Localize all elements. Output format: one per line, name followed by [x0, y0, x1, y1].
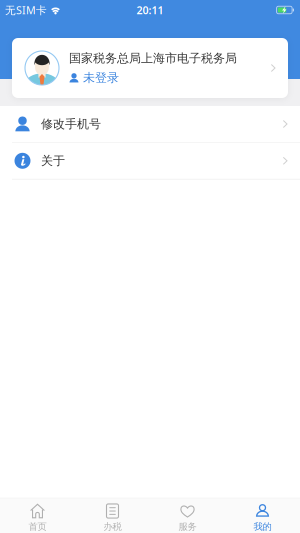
button[interactable]: 办税: [75, 498, 150, 533]
staticText: 未登录: [83, 70, 119, 85]
button[interactable]: 国家税务总局上海市电子税务局: [12, 38, 288, 98]
staticText: 服务: [178, 521, 196, 532]
staticText: 修改手机号: [41, 117, 101, 131]
staticText: 办税: [103, 521, 121, 532]
staticText: 无SIM卡: [5, 3, 47, 17]
button[interactable]: 修改手机号: [0, 106, 300, 142]
staticText: 国家税务总局上海市电子税务局: [69, 51, 237, 65]
button[interactable]: 关于: [0, 143, 300, 179]
button[interactable]: 我的: [225, 498, 300, 533]
staticText: 我的: [253, 521, 271, 532]
button[interactable]: 首页: [0, 498, 75, 533]
button[interactable]: 服务: [150, 498, 225, 533]
staticText: 20:11: [136, 3, 163, 17]
staticText: 关于: [41, 153, 65, 168]
staticText: 首页: [28, 521, 46, 532]
